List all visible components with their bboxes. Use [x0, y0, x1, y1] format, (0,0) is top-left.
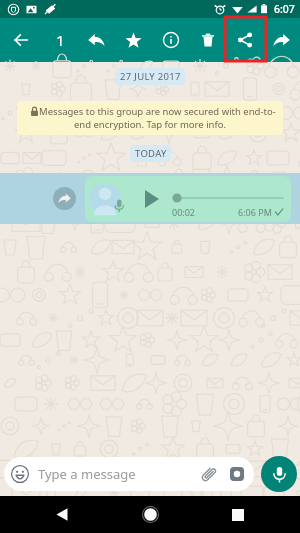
- button[interactable]: Star: [115, 18, 152, 62]
- staticText: 6:07: [274, 2, 295, 16]
- button[interactable]: Delete: [189, 18, 226, 62]
- button[interactable]: Camera: [225, 462, 249, 486]
- button[interactable]: 00:02: [0, 173, 300, 224]
- button[interactable]: Forward: [263, 18, 300, 62]
- staticText: TODAY: [135, 147, 167, 160]
- button[interactable]: Back: [40, 496, 84, 533]
- staticText: 27 JULY 2017: [120, 70, 181, 83]
- staticText: 6:06 PM: [238, 206, 272, 218]
- button[interactable]: Share: [226, 18, 263, 62]
- button[interactable]: 27 JULY 2017: [115, 68, 185, 85]
- button[interactable]: Recents: [216, 496, 260, 533]
- button[interactable]: Record voice message: [261, 456, 297, 492]
- button[interactable]: Home: [128, 496, 172, 533]
- staticText: Messages to this group are now secured w…: [24, 105, 276, 131]
- button[interactable]: Attach: [196, 462, 220, 486]
- button[interactable]: Reply: [78, 18, 115, 62]
- staticText: 00:02: [172, 206, 196, 218]
- button[interactable]: TODAY: [130, 145, 171, 162]
- staticText: Type a message: [38, 465, 136, 483]
- staticText: 1: [56, 30, 65, 50]
- button[interactable]: Info: [152, 18, 189, 62]
- button[interactable]: Back: [0, 18, 41, 62]
- button[interactable]: Type a message: [4, 457, 254, 491]
- button[interactable]: Messages to this group are now secured w…: [17, 101, 283, 135]
